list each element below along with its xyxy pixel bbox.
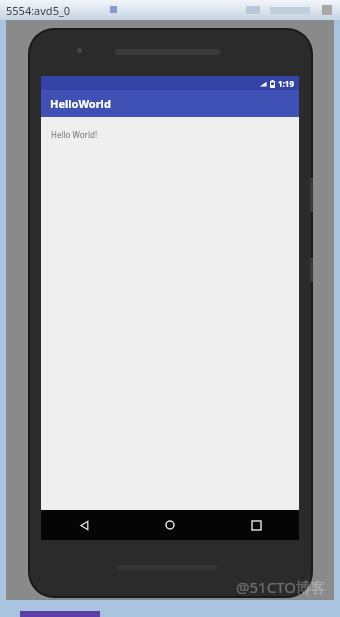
button[interactable]: Recent apps — [213, 510, 299, 540]
staticText: Hello World! — [51, 129, 98, 140]
button[interactable]: Back — [41, 510, 127, 540]
staticText: HelloWorld — [50, 96, 111, 111]
button[interactable]: Home — [127, 510, 213, 540]
staticText: 1:19 — [278, 78, 294, 89]
staticText: @51CTO博客 — [236, 577, 326, 597]
staticText: 5554:avd5_0 — [6, 3, 71, 18]
button[interactable]: HelloWorld — [41, 90, 299, 117]
